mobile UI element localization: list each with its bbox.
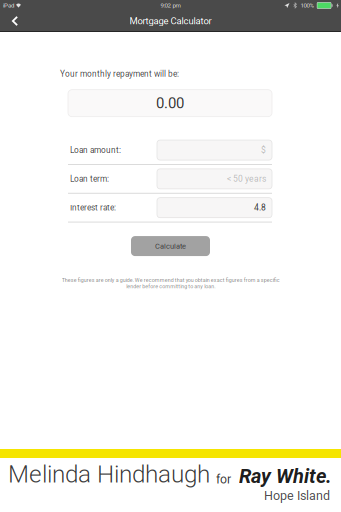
staticText: iPad <box>3 2 14 9</box>
staticText: for <box>216 472 231 486</box>
staticText: Melinda Hindhaugh <box>8 460 210 488</box>
staticText: 0.00 <box>156 94 184 112</box>
staticText: Loan amount: <box>70 145 121 155</box>
staticText: Mortgage Calculator <box>129 15 211 27</box>
staticText: Ray White. <box>239 464 332 488</box>
staticText: < 50 years <box>227 174 266 184</box>
staticText: 9:02 pm <box>160 2 180 9</box>
staticText: 100% <box>300 2 313 9</box>
staticText: Loan term: <box>70 174 109 184</box>
staticText: Hope Island <box>264 488 330 503</box>
staticText: $ <box>261 145 266 155</box>
staticText: Calculate <box>155 242 186 250</box>
button[interactable]: Calculate <box>131 236 210 256</box>
button[interactable]: Back <box>0 11 30 31</box>
staticText: Your monthly repayment will be: <box>60 69 179 79</box>
staticText: These figures are only a guide. We recom… <box>61 277 279 290</box>
staticText: Interest rate: <box>70 203 116 212</box>
staticText: 4.8 <box>254 203 266 213</box>
